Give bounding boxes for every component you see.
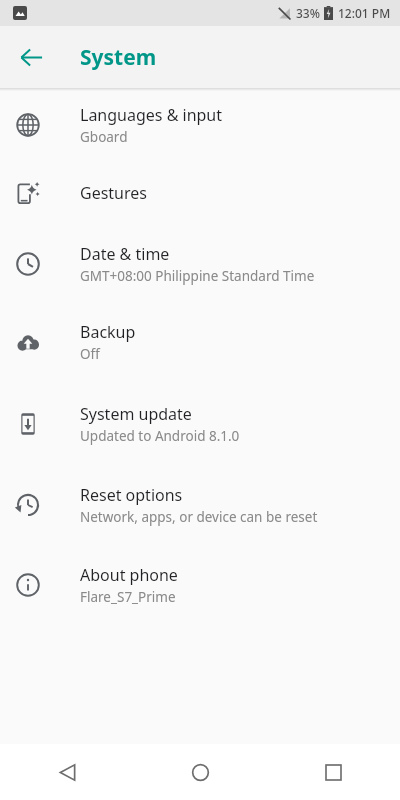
button[interactable]: Reset options xyxy=(0,465,400,545)
button[interactable]: Date & time xyxy=(0,227,400,301)
staticText: Gboard xyxy=(80,128,128,146)
button[interactable]: System update xyxy=(0,383,400,465)
button[interactable]: Backup xyxy=(0,301,400,383)
button[interactable]: Recent apps xyxy=(267,744,400,800)
button[interactable]: Gestures xyxy=(0,159,400,227)
button[interactable]: Languages & input xyxy=(0,91,400,159)
staticText: Updated to Android 8.1.0 xyxy=(80,427,240,445)
staticText: Reset options xyxy=(80,484,183,506)
staticText: Network, apps, or device can be reset xyxy=(80,508,318,526)
staticText: System xyxy=(80,43,157,72)
staticText: Languages & input xyxy=(80,104,223,126)
button[interactable]: Back xyxy=(8,34,54,80)
button[interactable]: Back xyxy=(0,744,134,800)
staticText: Date & time xyxy=(80,243,170,265)
staticText: Flare_S7_Prime xyxy=(80,588,176,606)
staticText: Off xyxy=(80,345,100,363)
staticText: 33% xyxy=(296,5,320,21)
staticText: GMT+08:00 Philippine Standard Time xyxy=(80,267,315,285)
staticText: Backup xyxy=(80,321,136,343)
staticText: Gestures xyxy=(80,182,147,204)
button[interactable]: About phone xyxy=(0,545,400,625)
staticText: 12:01 PM xyxy=(338,5,391,21)
staticText: System update xyxy=(80,403,192,425)
staticText: About phone xyxy=(80,564,178,586)
button[interactable]: Home xyxy=(134,744,267,800)
